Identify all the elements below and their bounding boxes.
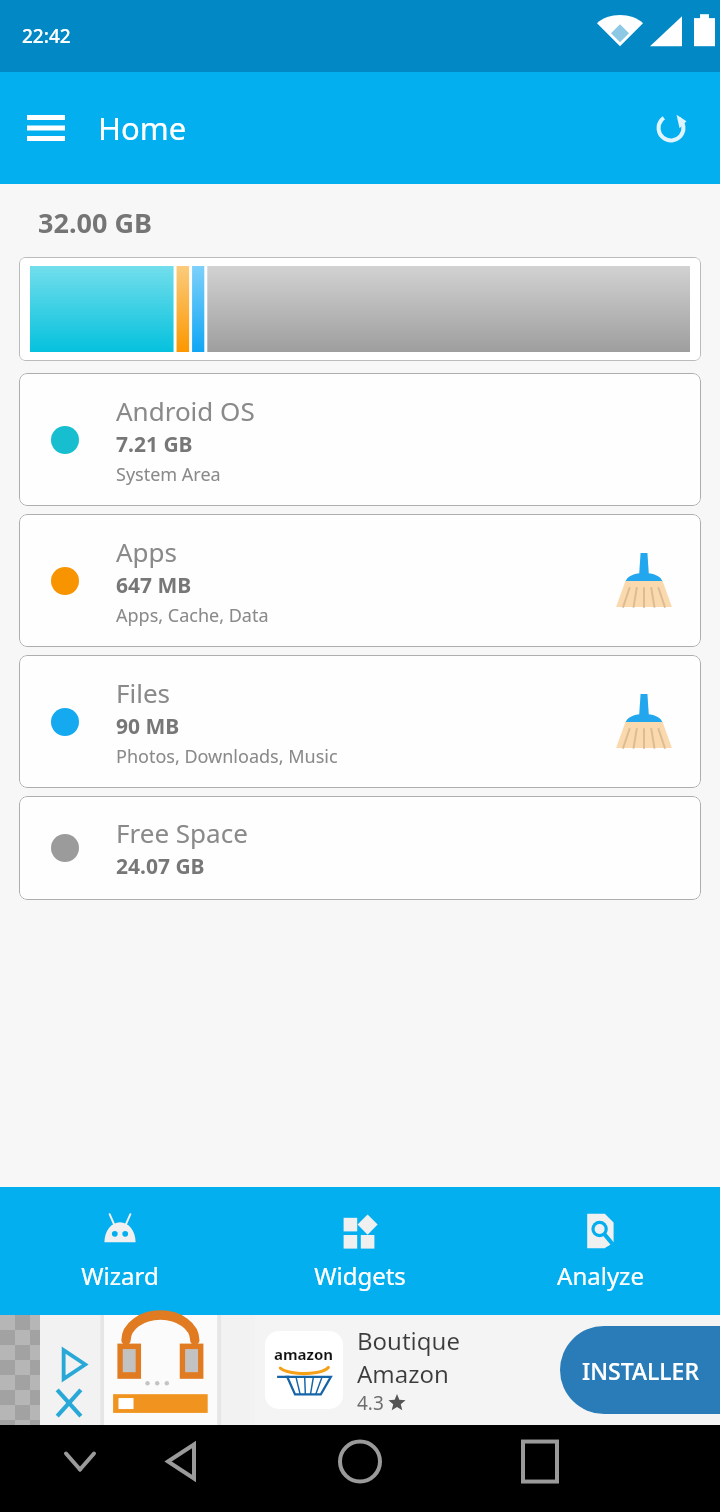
staticText: Files xyxy=(116,675,171,710)
button[interactable]: Widgets xyxy=(240,1187,480,1315)
button[interactable]: Refresh xyxy=(642,99,700,157)
staticText: System Area xyxy=(116,462,221,487)
staticText: Apps, Cache, Data xyxy=(116,603,269,628)
button[interactable]: Analyze xyxy=(480,1187,720,1315)
button[interactable]: Open navigation menu xyxy=(18,100,74,156)
staticText: Amazon xyxy=(357,1357,449,1390)
button[interactable]: Clean Files xyxy=(613,691,675,753)
staticText: Wizard xyxy=(81,1259,159,1292)
button[interactable] xyxy=(19,257,701,361)
button[interactable]: Free Space xyxy=(19,796,701,900)
staticText: 7.21 GB xyxy=(116,430,193,459)
staticText: Widgets xyxy=(314,1259,406,1292)
staticText: amazon xyxy=(274,1344,334,1364)
staticText: 90 MB xyxy=(116,712,180,741)
staticText: 32.00 GB xyxy=(38,204,152,241)
staticText: Home xyxy=(98,107,187,149)
staticText: 24.07 GB xyxy=(116,852,205,881)
staticText: Boutique xyxy=(357,1324,460,1357)
staticText: Free Space xyxy=(116,815,248,850)
button[interactable]: Wizard xyxy=(0,1187,240,1315)
staticText: Android OS xyxy=(116,393,255,428)
staticText: INSTALLER xyxy=(582,1355,699,1386)
button[interactable]: Files xyxy=(19,655,701,788)
button[interactable]: Android OS xyxy=(19,373,701,506)
staticText: 4.3 xyxy=(357,1390,384,1416)
button[interactable]: INSTALLER xyxy=(560,1326,720,1414)
button[interactable]: Apps xyxy=(19,514,701,647)
staticText: Photos, Downloads, Music xyxy=(116,744,338,769)
button[interactable]: Clean Apps xyxy=(613,550,675,612)
staticText: 647 MB xyxy=(116,571,192,600)
staticText: Analyze xyxy=(557,1259,644,1292)
staticText: Apps xyxy=(116,534,178,569)
staticText: 22:42 xyxy=(22,23,71,49)
